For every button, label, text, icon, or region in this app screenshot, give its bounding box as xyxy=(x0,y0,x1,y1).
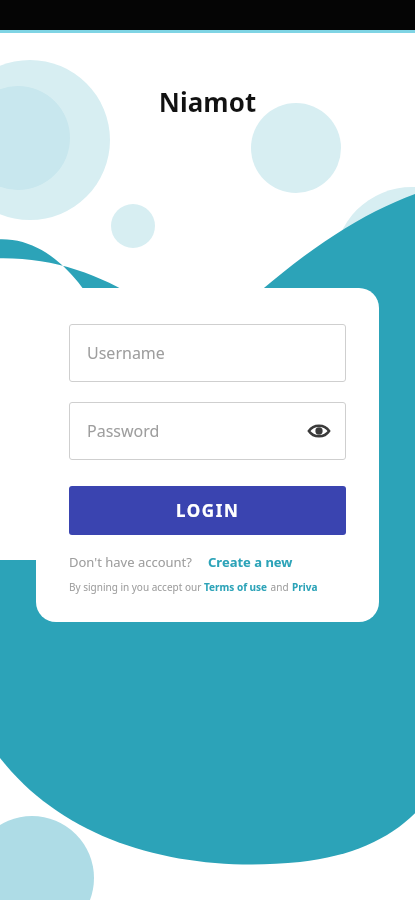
button[interactable]: Terms of use xyxy=(204,580,268,594)
button[interactable]: LOGIN xyxy=(69,486,346,535)
staticText: Terms of use xyxy=(204,580,268,594)
staticText: Password xyxy=(87,420,160,442)
staticText: Don't have account? xyxy=(69,553,192,571)
button[interactable]: Password xyxy=(69,402,346,460)
staticText: Create a new xyxy=(208,553,293,571)
staticText: Priva xyxy=(292,580,318,594)
button[interactable]: Username xyxy=(69,324,346,382)
staticText: Niamot xyxy=(0,84,415,119)
staticText: and xyxy=(268,580,292,594)
staticText: By signing in you accept our xyxy=(69,580,204,594)
button[interactable]: Show password xyxy=(306,418,332,444)
staticText: Username xyxy=(87,342,165,364)
button[interactable]: Priva xyxy=(292,580,318,594)
staticText: LOGIN xyxy=(176,499,240,522)
button[interactable]: Create a new xyxy=(208,553,293,571)
